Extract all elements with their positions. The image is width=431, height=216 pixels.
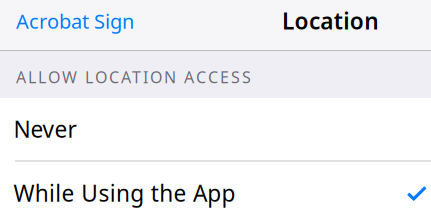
button[interactable]: Acrobat Sign <box>0 0 146 52</box>
staticText: ALLOW LOCATION ACCESS <box>16 66 251 88</box>
staticText: Location <box>282 6 378 36</box>
staticText: Never <box>13 114 76 144</box>
staticText: Acrobat Sign <box>16 8 134 34</box>
staticText: While Using the App <box>13 178 235 208</box>
button[interactable]: While Using the App <box>0 162 431 216</box>
button[interactable]: Never <box>0 98 431 160</box>
